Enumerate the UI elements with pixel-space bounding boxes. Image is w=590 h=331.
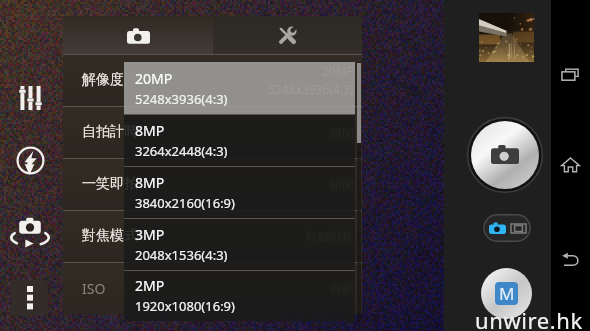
button[interactable]: Tools tab [213, 16, 362, 54]
staticText: 對焦模式 [82, 227, 138, 245]
button[interactable]: 對焦模式 [63, 210, 362, 262]
staticText: 1920x1080(16:9) [135, 297, 235, 315]
button[interactable]: 8MP [124, 166, 355, 218]
staticText: 自動 [330, 281, 354, 296]
staticText: 2048x1536(4:3) [135, 246, 228, 264]
staticText: 自拍計時 [82, 123, 138, 141]
staticText: 3264x2448(4:3) [135, 142, 228, 160]
staticText: 8MP [135, 173, 165, 192]
button[interactable]: 2MP [124, 270, 355, 321]
button[interactable]: Recents [551, 54, 590, 94]
staticText: M [499, 282, 515, 305]
staticText: 輕觸對焦 [306, 229, 354, 244]
button[interactable]: ISO [63, 262, 362, 314]
button[interactable]: 8MP [124, 114, 355, 166]
button[interactable]: 一笑即拍 [63, 158, 362, 210]
button[interactable]: Switch camera [6, 205, 54, 253]
button[interactable]: Photo or video mode [483, 214, 531, 242]
staticText: 5248x3936(4:3) [135, 90, 228, 108]
staticText: 5248x3936(4:3) [268, 81, 354, 97]
button[interactable]: Flash [8, 138, 52, 182]
button[interactable]: Home [551, 144, 590, 184]
button[interactable]: 20MP [124, 62, 355, 114]
staticText: 關閉 [330, 177, 354, 192]
staticText: 8MP [135, 121, 165, 140]
button[interactable]: 自拍計時 [63, 106, 362, 158]
staticText: 3MP [135, 225, 165, 244]
staticText: unwire.hk [475, 305, 583, 331]
button[interactable]: Back [551, 239, 590, 279]
button[interactable]: 3MP [124, 218, 355, 270]
staticText: 2MP [135, 276, 165, 295]
button[interactable]: Shooting mode [481, 268, 532, 319]
staticText: 3840x2160(16:9) [135, 194, 235, 212]
button[interactable]: 解像度 [63, 54, 362, 106]
staticText: 關閉 [330, 125, 354, 140]
button[interactable]: More options [11, 280, 48, 316]
staticText: 解像度 [82, 71, 124, 89]
button[interactable]: Camera settings [8, 76, 52, 120]
staticText: ISO [82, 279, 106, 298]
button[interactable]: Gallery [479, 13, 534, 62]
button[interactable]: Camera tab [63, 16, 213, 54]
staticText: 20MP [322, 63, 354, 79]
button[interactable]: Shutter [467, 117, 543, 193]
staticText: 一笑即拍 [82, 175, 138, 193]
staticText: 20MP [135, 69, 173, 88]
